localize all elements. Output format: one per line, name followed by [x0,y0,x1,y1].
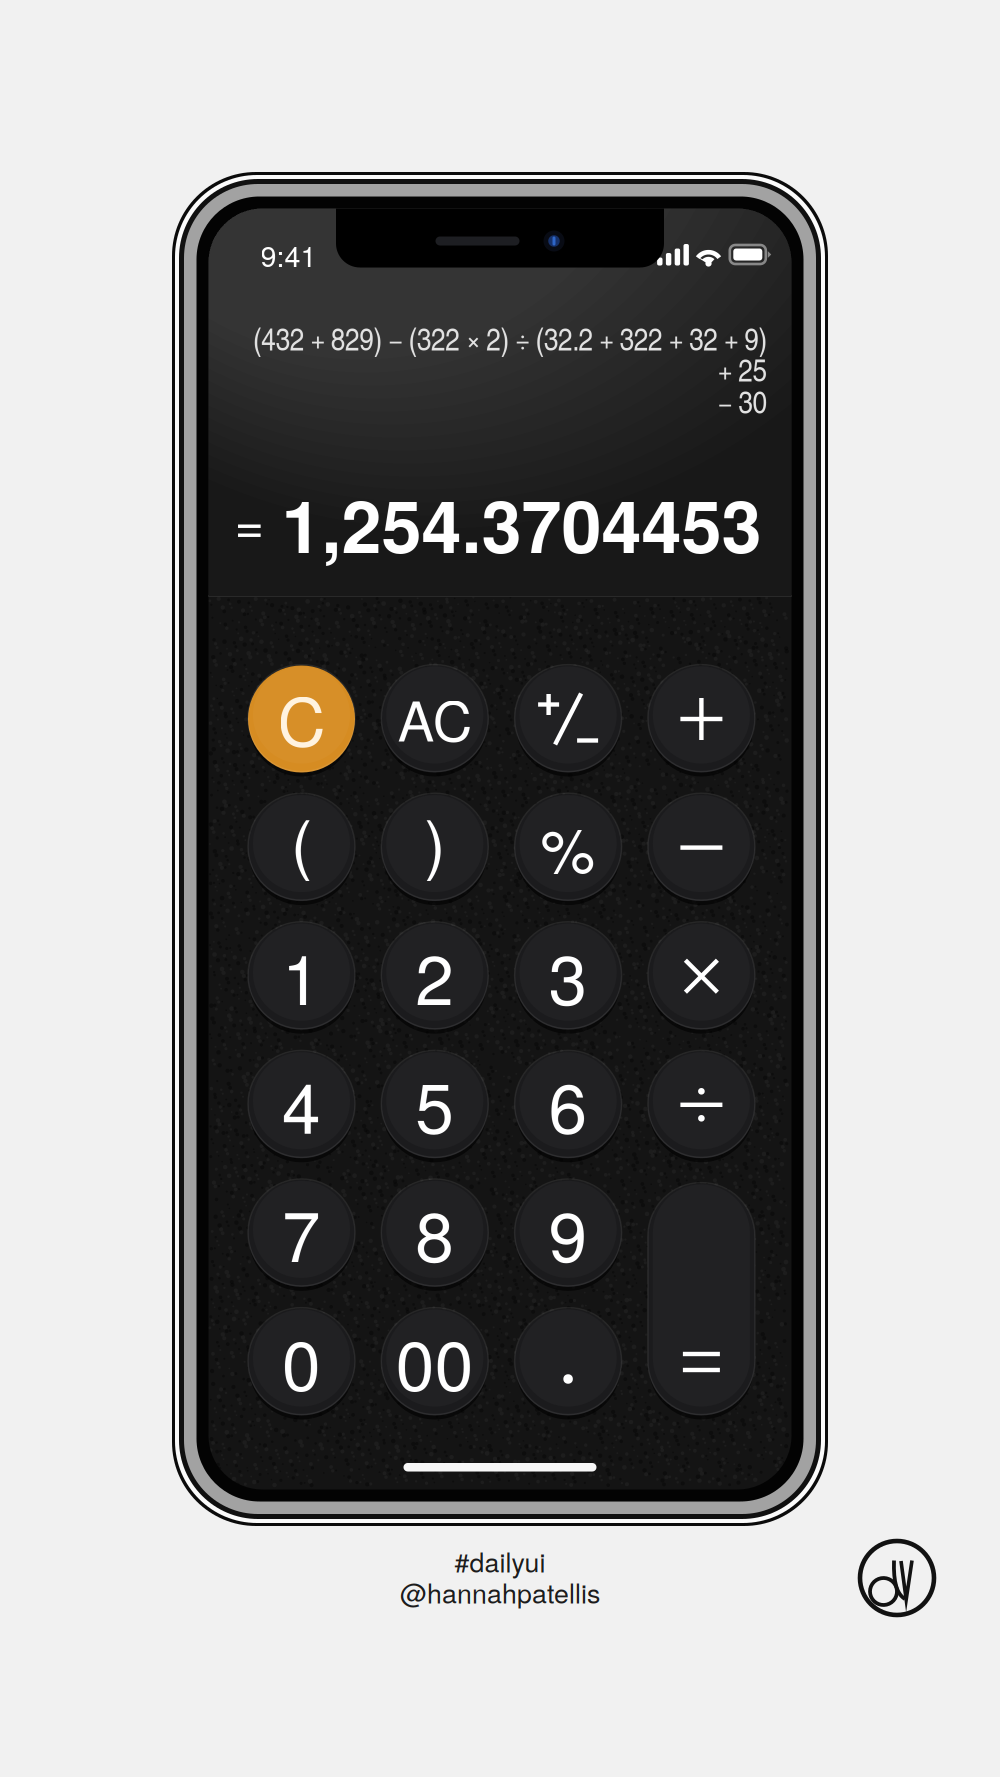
button[interactable]: Plus [648,665,755,772]
staticText: ( [291,794,312,885]
staticText: @hannahpatellis [400,1573,600,1611]
staticText: % [541,803,596,890]
button[interactable]: C [248,665,355,772]
staticText: #dailyui [454,1542,545,1580]
staticText: 8 [415,1183,454,1282]
staticText: 9 [549,1183,588,1282]
button[interactable]: Minus [648,794,755,901]
button[interactable]: Plus minus [515,665,622,772]
button[interactable]: 4 [248,1051,355,1158]
staticText: 3 [549,926,588,1025]
button[interactable]: ( [248,794,355,901]
button[interactable]: 1 [248,923,355,1030]
staticText: 5 [415,1054,454,1153]
staticText: ) [424,794,445,885]
button[interactable]: 3 [515,923,622,1030]
button[interactable]: AC [381,665,488,772]
staticText: + 25 [718,347,767,390]
staticText: 4 [282,1054,321,1153]
button[interactable]: % [515,794,622,901]
button[interactable]: 7 [248,1180,355,1287]
staticText: 1 [282,926,321,1025]
staticText: 2 [415,926,454,1025]
staticText: 9:41 [260,234,316,275]
button[interactable]: ) [381,794,488,901]
staticText: 0 [282,1311,321,1411]
button[interactable]: 8 [381,1180,488,1287]
staticText: 6 [549,1054,588,1153]
staticText: = [234,485,264,558]
button[interactable]: 6 [515,1051,622,1158]
button[interactable]: 0 [248,1308,355,1415]
button[interactable]: Equals [648,1183,755,1415]
button[interactable]: 5 [381,1051,488,1158]
button[interactable]: 9 [515,1180,622,1287]
staticText: 00 [396,1311,474,1411]
staticText: − 30 [718,379,767,422]
staticText: C [277,670,325,766]
staticText: 1,254.3704453 [281,472,761,575]
staticText: (432 + 829) − (322 × 2) ÷ (32.2 + 322 + … [253,316,767,359]
button[interactable]: Decimal point [515,1308,622,1415]
staticText: AC [398,679,472,757]
staticText: 7 [282,1183,321,1282]
button[interactable]: Multiply [648,923,755,1030]
button[interactable]: 00 [381,1308,488,1415]
button[interactable]: Divide [648,1051,755,1158]
button[interactable]: 2 [381,923,488,1030]
